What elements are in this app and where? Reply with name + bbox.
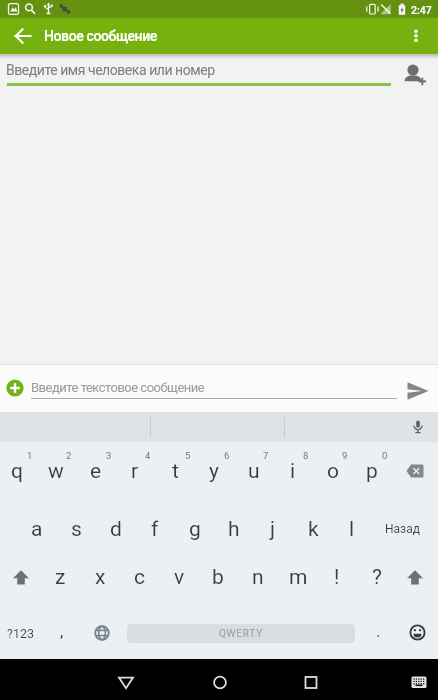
staticText: a xyxy=(31,517,43,542)
staticText: 5 xyxy=(185,450,191,461)
button[interactable]: i xyxy=(233,456,353,486)
staticText: k xyxy=(308,517,319,542)
staticText: q xyxy=(11,459,23,484)
staticText: z xyxy=(55,565,66,590)
button[interactable]: d xyxy=(56,514,176,544)
button[interactable]: w xyxy=(0,456,116,486)
button[interactable]: ! xyxy=(277,562,397,592)
button[interactable] xyxy=(117,674,135,692)
staticText: i xyxy=(290,459,296,484)
button[interactable]: QWERTY xyxy=(127,624,355,643)
staticText: d xyxy=(110,517,122,542)
button[interactable]: x xyxy=(40,562,160,592)
staticText: 1 xyxy=(27,450,33,461)
staticText: u xyxy=(248,459,260,484)
button[interactable] xyxy=(211,673,229,691)
button[interactable]: r xyxy=(75,456,195,486)
staticText: 9 xyxy=(342,450,348,461)
staticText: j xyxy=(270,517,276,542)
staticText: ! xyxy=(334,565,340,590)
button[interactable]: y xyxy=(154,456,274,486)
button[interactable]: j xyxy=(213,514,333,544)
staticText: 3 xyxy=(106,450,112,461)
button[interactable] xyxy=(409,624,426,641)
button[interactable] xyxy=(406,464,426,478)
staticText: s xyxy=(71,517,82,542)
button[interactable] xyxy=(411,420,425,435)
button[interactable]: q xyxy=(0,456,77,486)
button[interactable]: p xyxy=(312,456,432,486)
button[interactable] xyxy=(411,676,427,689)
staticText: r xyxy=(131,459,139,484)
button[interactable]: z xyxy=(0,562,120,592)
staticText: g xyxy=(189,517,201,542)
staticText: w xyxy=(48,459,64,484)
button[interactable]: . xyxy=(318,616,438,646)
staticText: 7 xyxy=(263,450,269,461)
staticText: Введите текстовое сообщение xyxy=(31,380,205,395)
button[interactable]: b xyxy=(158,562,278,592)
button[interactable] xyxy=(302,673,320,691)
staticText: Введите имя человека или номер xyxy=(6,62,215,78)
staticText: 6 xyxy=(224,450,230,461)
staticText: h xyxy=(228,517,240,542)
staticText: f xyxy=(151,517,159,542)
button[interactable]: h xyxy=(174,514,294,544)
button[interactable]: c xyxy=(79,562,199,592)
button[interactable] xyxy=(94,625,110,641)
staticText: 4 xyxy=(145,450,151,461)
button[interactable] xyxy=(14,27,32,45)
button[interactable]: , xyxy=(2,616,122,646)
button[interactable]: ? xyxy=(317,562,437,592)
button[interactable]: v xyxy=(119,562,239,592)
staticText: e xyxy=(90,459,102,484)
staticText: , xyxy=(60,621,64,641)
button[interactable] xyxy=(406,568,424,586)
button[interactable]: l xyxy=(292,514,412,544)
button[interactable]: s xyxy=(16,514,136,544)
button[interactable] xyxy=(6,379,24,397)
button[interactable]: a xyxy=(0,514,97,544)
staticText: 2:47 xyxy=(411,4,432,16)
staticText: c xyxy=(134,565,145,590)
staticText: x xyxy=(95,565,106,590)
button[interactable] xyxy=(12,568,30,586)
staticText: n xyxy=(252,565,264,590)
button[interactable]: k xyxy=(253,514,373,544)
button[interactable]: m xyxy=(238,562,358,592)
button[interactable]: e xyxy=(36,456,156,486)
staticText: . xyxy=(376,621,381,641)
staticText: v xyxy=(174,565,185,590)
staticText: Назад xyxy=(385,522,420,536)
button[interactable] xyxy=(400,58,428,86)
staticText: l xyxy=(349,517,355,542)
button[interactable]: u xyxy=(194,456,314,486)
button[interactable]: o xyxy=(273,456,393,486)
button[interactable]: g xyxy=(135,514,255,544)
staticText: 8 xyxy=(303,450,309,461)
staticText: y xyxy=(209,459,219,484)
button[interactable]: n xyxy=(198,562,318,592)
staticText: p xyxy=(366,459,378,484)
staticText: 0 xyxy=(382,450,388,461)
staticText: 2 xyxy=(66,450,72,461)
staticText: b xyxy=(212,565,224,590)
staticText: m xyxy=(289,565,308,590)
staticText: t xyxy=(172,459,179,484)
button[interactable]: ?123 xyxy=(0,618,80,648)
button[interactable]: f xyxy=(95,514,215,544)
staticText: ? xyxy=(372,565,382,590)
button[interactable] xyxy=(409,29,423,43)
staticText: ?123 xyxy=(7,626,34,641)
staticText: o xyxy=(327,459,339,484)
staticText: QWERTY xyxy=(219,628,263,640)
button[interactable]: Назад xyxy=(342,514,438,544)
button[interactable] xyxy=(406,381,430,401)
button[interactable]: t xyxy=(115,456,235,486)
staticText: Новое сообщение xyxy=(44,28,157,44)
